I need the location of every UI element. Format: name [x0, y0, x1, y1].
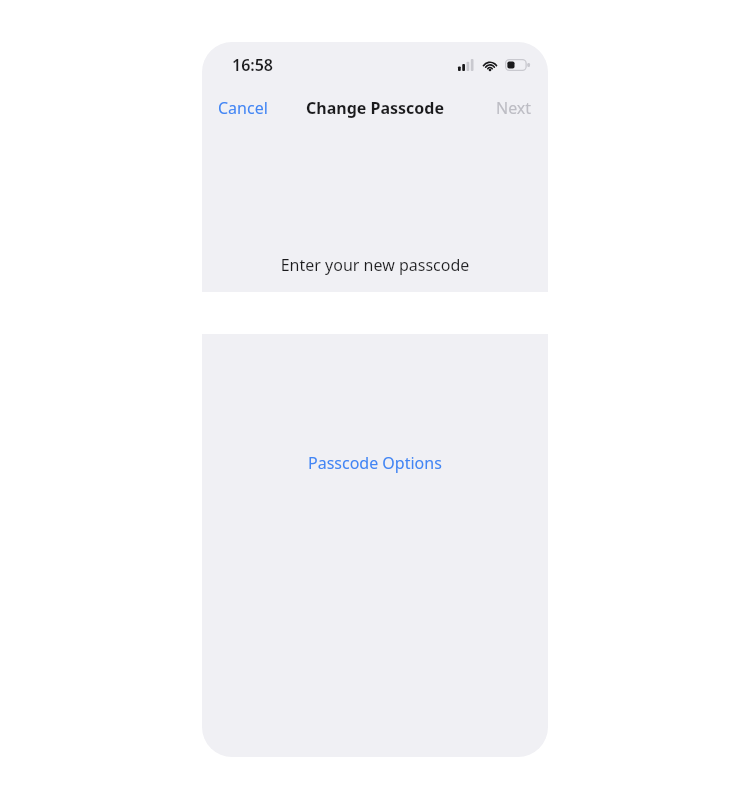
staticText: Passcode Options: [308, 452, 442, 474]
button[interactable]: Passcode Options: [288, 444, 462, 482]
staticText: Cancel: [218, 97, 268, 119]
staticText: Next: [496, 97, 532, 119]
staticText: Enter your new passcode: [202, 254, 548, 276]
button[interactable]: Cancel: [202, 89, 284, 127]
button[interactable]: Next: [480, 89, 548, 127]
staticText: Change Passcode: [306, 97, 444, 119]
staticText: 16:58: [232, 54, 274, 76]
